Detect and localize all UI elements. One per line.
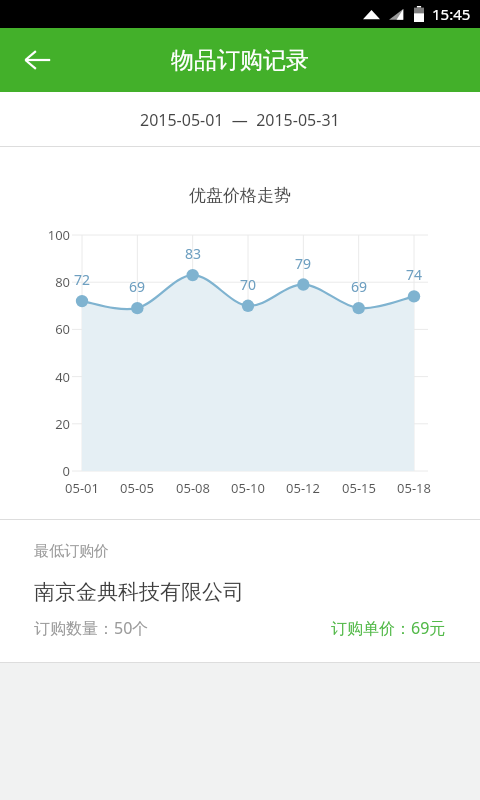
staticText: 南京金典科技有限公司	[34, 579, 244, 605]
staticText: 最低订购价	[34, 542, 109, 561]
staticText: 05-18	[386, 479, 442, 497]
staticText: 100	[30, 226, 70, 244]
button[interactable]: 2015-05-01 — 2015-05-31	[0, 92, 480, 147]
staticText: 79	[283, 254, 323, 273]
staticText: 20	[30, 415, 70, 433]
staticText: 15:45	[432, 4, 471, 24]
staticText: 订购单价：69元	[331, 617, 446, 639]
staticText: 05-01	[54, 479, 110, 497]
staticText: 80	[30, 273, 70, 291]
staticText: 05-08	[165, 479, 221, 497]
staticText: 优盘价格走势	[0, 185, 480, 206]
staticText: 物品订购记录	[171, 46, 309, 75]
staticText: 40	[30, 368, 70, 386]
staticText: 60	[30, 320, 70, 338]
staticText: 05-12	[275, 479, 331, 497]
staticText: 05-10	[220, 479, 276, 497]
staticText: 2015-05-01 — 2015-05-31	[140, 109, 340, 131]
staticText: 83	[173, 244, 213, 263]
staticText: 74	[394, 265, 434, 284]
staticText: 05-15	[331, 479, 387, 497]
staticText: 69	[117, 277, 157, 296]
button[interactable]: Back	[0, 28, 74, 92]
staticText: 72	[62, 270, 102, 289]
staticText: 订购数量：50个	[34, 617, 149, 639]
staticText: 70	[228, 275, 268, 294]
button[interactable]: 最低订购价	[0, 520, 480, 663]
staticText: 05-05	[109, 479, 165, 497]
staticText: 69	[339, 277, 379, 296]
staticText: 0	[30, 462, 70, 480]
